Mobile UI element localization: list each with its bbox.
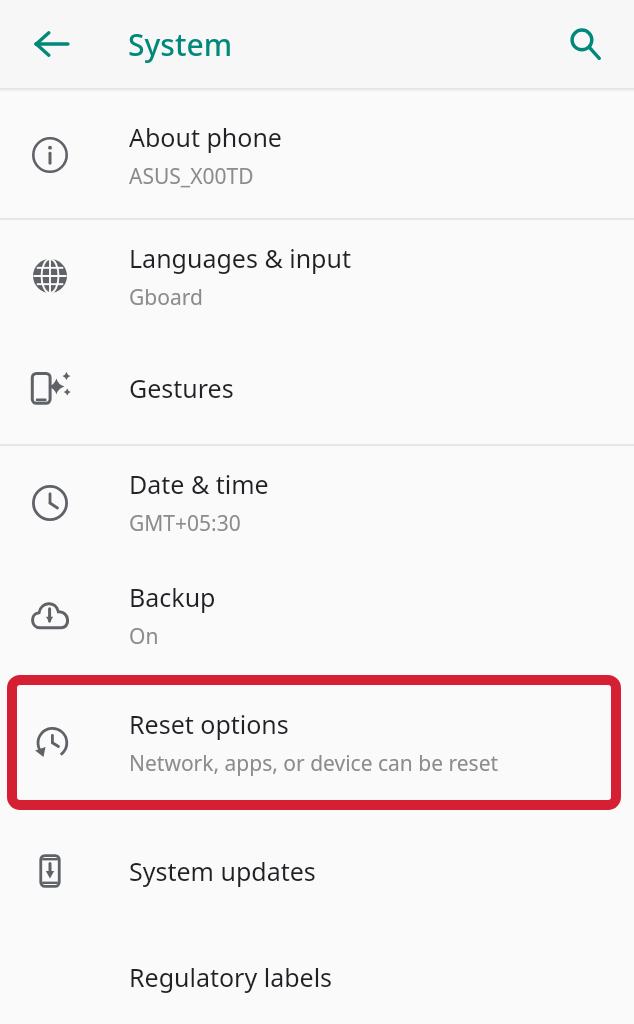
staticText: GMT+05:30	[129, 509, 241, 538]
staticText: Network, apps, or device can be reset	[129, 749, 499, 778]
button[interactable]: Search	[554, 13, 616, 75]
staticText: System updates	[129, 854, 316, 888]
button[interactable]: System updates	[0, 812, 634, 930]
staticText: Gboard	[129, 283, 203, 312]
button[interactable]: Reset options	[0, 672, 634, 812]
staticText: On	[129, 622, 159, 651]
button[interactable]: Gestures	[0, 332, 634, 444]
staticText: Languages & input	[129, 241, 351, 275]
staticText: Gestures	[129, 371, 234, 405]
button[interactable]: Backup	[0, 559, 634, 672]
staticText: Backup	[129, 580, 216, 614]
staticText: Reset options	[129, 707, 289, 741]
button[interactable]: About phone	[0, 92, 634, 218]
staticText: Date & time	[129, 467, 269, 501]
button[interactable]: Back	[20, 13, 82, 75]
button[interactable]: Date & time	[0, 446, 634, 559]
button[interactable]: Languages & input	[0, 220, 634, 332]
staticText: System	[128, 24, 233, 65]
staticText: Regulatory labels	[129, 960, 333, 994]
staticText: About phone	[129, 120, 282, 154]
button[interactable]: Regulatory labels	[0, 930, 634, 1024]
staticText: ASUS_X00TD	[129, 162, 254, 191]
